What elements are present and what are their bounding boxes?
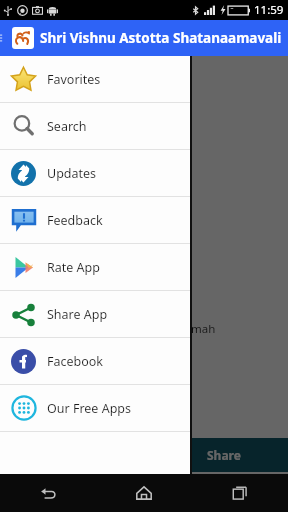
staticText: Facebook <box>47 353 104 370</box>
button[interactable]: Feedback <box>0 197 190 243</box>
button[interactable]: Share <box>0 438 288 472</box>
button[interactable]: Our Free Apps <box>0 385 190 431</box>
staticText: Feedback <box>47 212 103 229</box>
button[interactable]: Back <box>0 474 96 512</box>
staticText: Share App <box>47 306 108 323</box>
staticText: Rate App <box>47 259 100 276</box>
button[interactable]: Open navigation drawer <box>0 20 12 56</box>
button[interactable]: Favorites <box>0 56 190 102</box>
staticText: Shri Vishnu Astotta Shatanaamavali <box>40 29 282 47</box>
button[interactable]: Search <box>0 103 190 149</box>
staticText: Share <box>207 447 241 463</box>
staticText: Search <box>47 118 87 135</box>
staticText: Our Free Apps <box>47 400 132 417</box>
button[interactable]: Facebook <box>0 338 190 384</box>
staticText: 11:59 <box>254 2 284 18</box>
staticText: Updates <box>47 165 97 182</box>
button[interactable]: Share App <box>0 291 190 337</box>
button[interactable]: Updates <box>0 150 190 196</box>
button[interactable]: Recent apps <box>192 474 288 512</box>
staticText: mah <box>191 321 216 337</box>
button[interactable]: Home <box>96 474 192 512</box>
button[interactable]: App icon <box>12 27 34 49</box>
button[interactable]: Rate App <box>0 244 190 290</box>
staticText: Favorites <box>47 71 101 88</box>
